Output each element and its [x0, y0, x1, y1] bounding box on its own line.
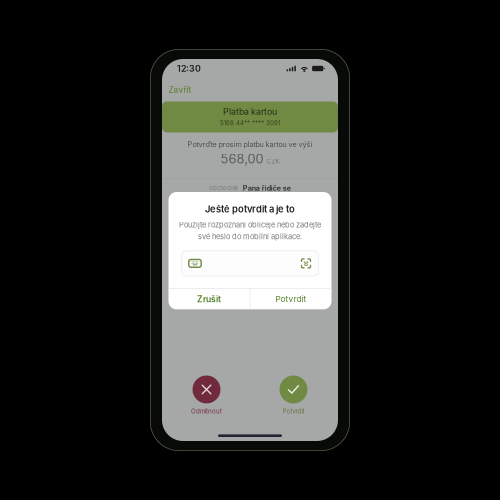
button[interactable]: Zadat heslo — [181, 251, 219, 276]
staticText: Zavřít — [169, 85, 192, 95]
staticText: Potvrdit — [282, 407, 304, 415]
staticText: Potvrďte prosím platbu kartou ve výši — [187, 140, 312, 149]
staticText: Odmítnout — [191, 407, 222, 415]
staticText: 568,00 — [220, 151, 263, 167]
staticText: 12:30 — [177, 63, 201, 74]
staticText: CZK — [267, 157, 280, 165]
button[interactable]: Zavřít — [162, 81, 200, 99]
staticText: své heslo do mobilní aplikace. — [198, 232, 302, 241]
staticText: obchodník — [209, 185, 238, 192]
button[interactable]: Odmítnout — [163, 375, 250, 415]
staticText: 5168 44** **** 3091 — [220, 119, 280, 127]
staticText: Platba kartou — [223, 106, 277, 117]
staticText: Ještě potvrdit a je to — [205, 203, 295, 215]
button[interactable]: Zrušit — [168, 289, 250, 309]
staticText: Potvrdit — [275, 294, 306, 304]
button[interactable]: Potvrdit — [250, 289, 331, 309]
button[interactable]: Rozpoznání obličeje — [281, 251, 319, 276]
staticText: Použijte rozpoznání obličeje nebo zadejt… — [179, 220, 321, 229]
button[interactable]: Potvrdit — [250, 375, 337, 415]
staticText: Pana řidiče se — [243, 184, 291, 192]
staticText: Zrušit — [197, 294, 221, 304]
